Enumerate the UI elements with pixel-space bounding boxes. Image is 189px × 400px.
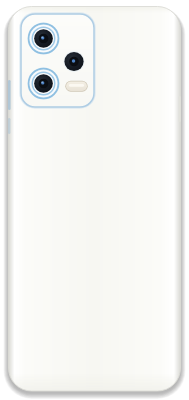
button[interactable]: Phone rear view, white, triple camera — [0, 0, 189, 400]
